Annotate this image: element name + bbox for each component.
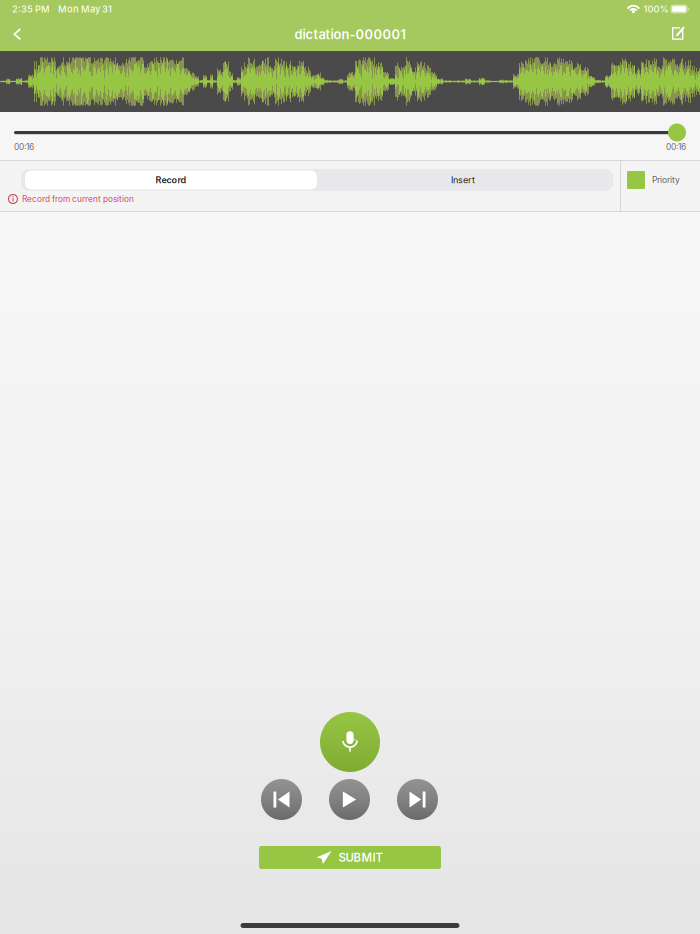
staticText: Priority [652, 175, 680, 185]
button[interactable]: SUBMIT [259, 846, 441, 869]
staticText: 00:16 [14, 142, 34, 152]
staticText: Insert [451, 174, 475, 185]
button[interactable]: Next [397, 779, 438, 820]
staticText: dictation-000001 [294, 27, 405, 42]
staticText: Record from current position [22, 194, 134, 204]
staticText: 100% [643, 3, 668, 15]
button[interactable]: Insert [317, 170, 609, 189]
button[interactable]: Compose [656, 18, 700, 51]
button[interactable]: Play [329, 779, 370, 820]
staticText: SUBMIT [338, 851, 383, 864]
staticText: 2:35 PM [12, 3, 50, 15]
button[interactable]: Record [25, 170, 317, 189]
staticText: 00:16 [666, 142, 686, 152]
button[interactable]: Back [0, 19, 37, 49]
button[interactable]: Record [320, 712, 380, 772]
staticText: Record [155, 174, 186, 185]
button[interactable]: Previous [261, 779, 302, 820]
staticText: Mon May 31 [58, 3, 112, 15]
